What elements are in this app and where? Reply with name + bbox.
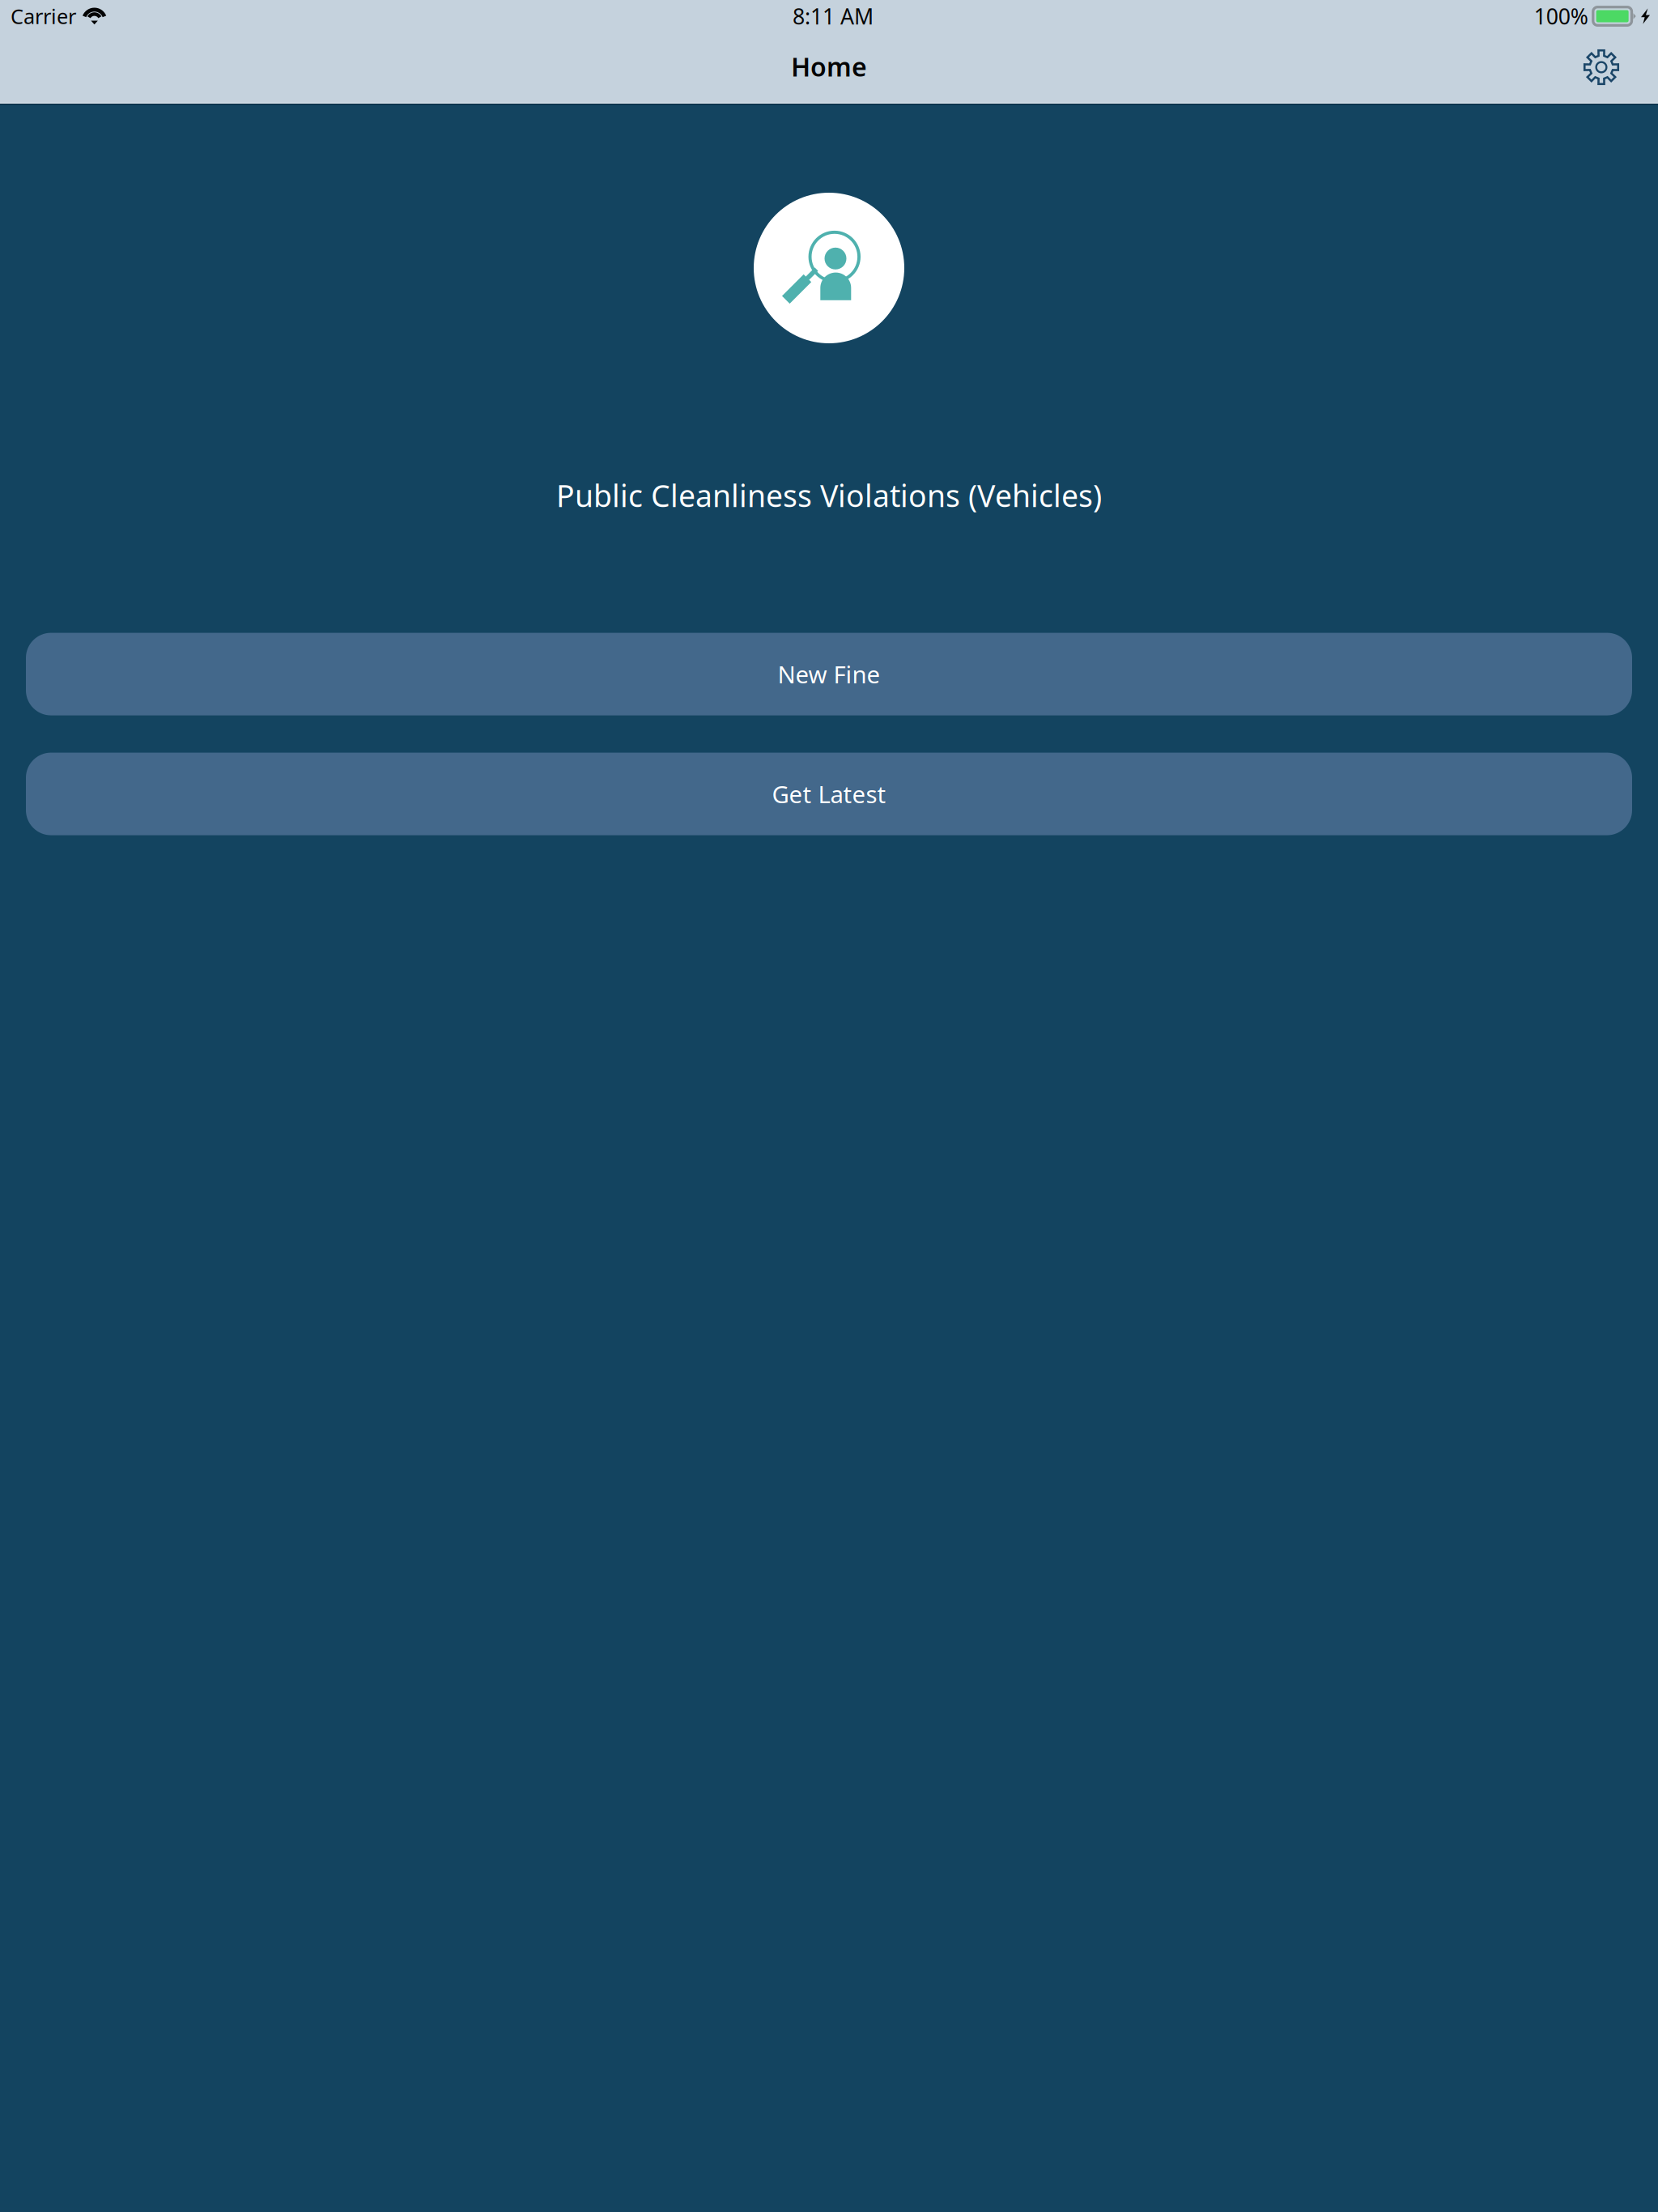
staticText: Public Cleanliness Violations (Vehicles) xyxy=(556,475,1102,515)
staticText: 8:11 AM xyxy=(793,2,874,31)
button[interactable]: Get Latest xyxy=(26,753,1632,835)
staticText: Carrier xyxy=(11,3,76,30)
button[interactable]: Settings xyxy=(1575,42,1627,94)
staticText: Home xyxy=(791,49,867,84)
staticText: New Fine xyxy=(778,658,880,690)
staticText: Get Latest xyxy=(772,778,886,810)
staticText: 100% xyxy=(1534,2,1588,31)
button[interactable]: New Fine xyxy=(26,633,1632,715)
